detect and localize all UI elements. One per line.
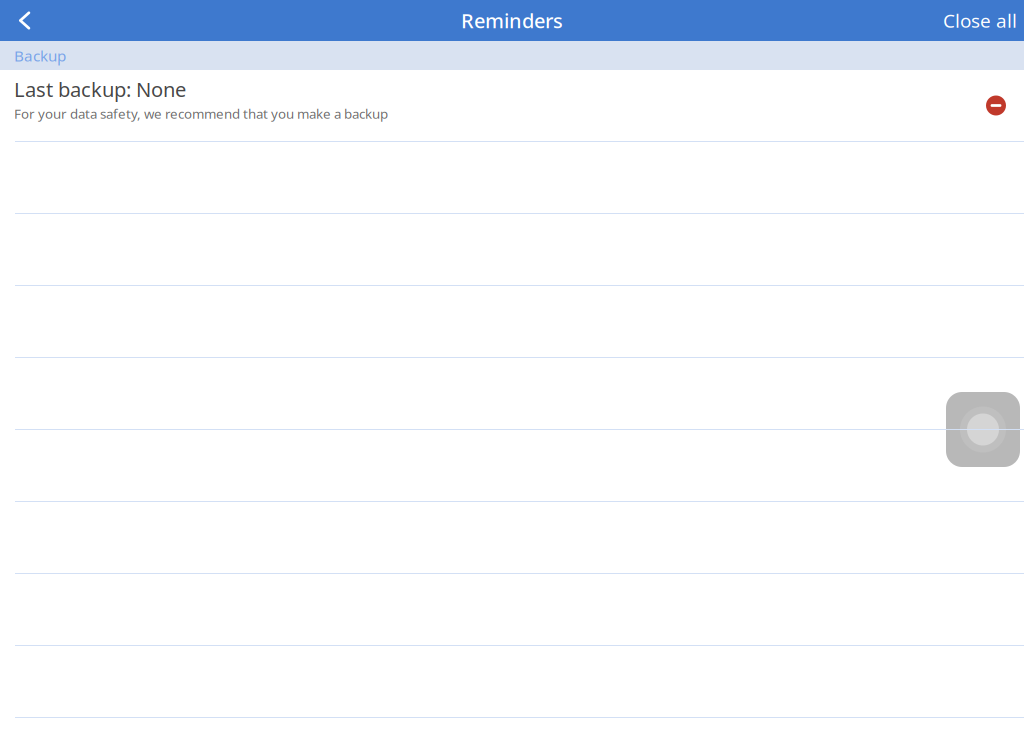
button[interactable] [0,717,1024,746]
button[interactable]: Close all [943,0,1024,41]
staticText: Close all [943,8,1017,33]
button[interactable]: Remove backup [972,70,1024,141]
staticText: Last backup: None [14,75,186,103]
staticText: Reminders [461,7,563,34]
button[interactable] [0,501,1024,573]
button[interactable] [0,141,1024,213]
button[interactable] [0,429,1024,501]
button[interactable] [0,213,1024,285]
button[interactable] [0,573,1024,645]
button[interactable]: Back [0,0,44,41]
button[interactable] [0,285,1024,357]
button[interactable]: Last backup: None [0,70,972,141]
button[interactable] [0,357,1024,429]
staticText: For your data safety, we recommend that … [14,104,388,123]
button[interactable] [0,645,1024,717]
staticText: Backup [14,45,66,66]
